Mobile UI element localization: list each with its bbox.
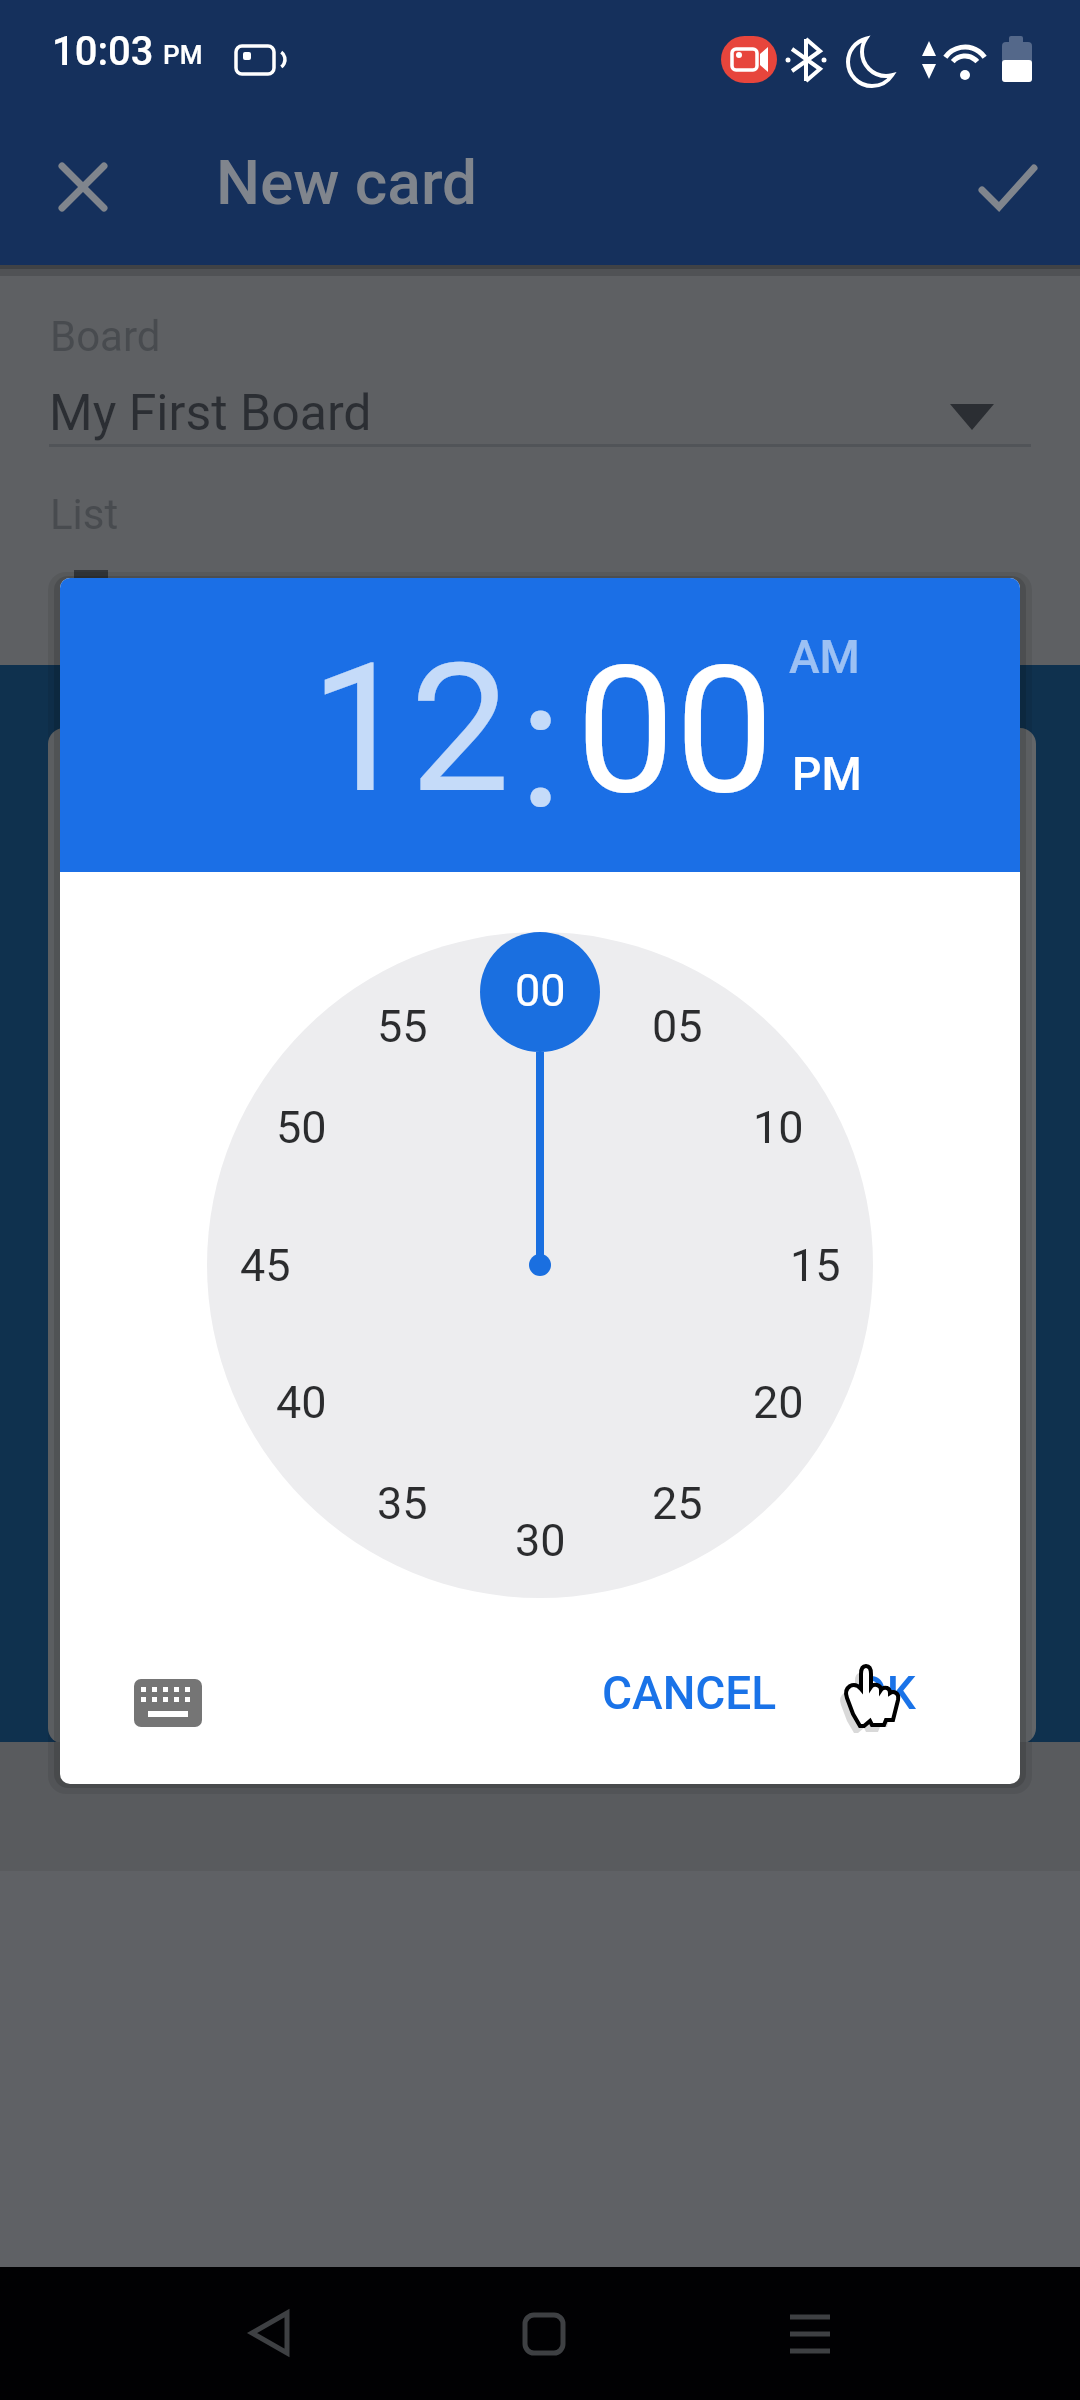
staticText: List <box>50 490 119 539</box>
staticText: My First Board <box>49 384 372 443</box>
staticText: 30 <box>515 1514 566 1567</box>
staticText: AM <box>789 630 860 684</box>
button[interactable] <box>770 2300 850 2370</box>
staticText: 05 <box>652 1000 703 1053</box>
staticText: CANCEL <box>602 1666 777 1720</box>
staticText: 10 <box>753 1101 804 1154</box>
staticText: Board <box>50 312 161 361</box>
button[interactable] <box>0 370 1080 460</box>
staticText: 00 <box>576 628 774 834</box>
button[interactable]: AM <box>764 627 884 687</box>
button[interactable]: CANCEL <box>569 1658 809 1728</box>
button[interactable] <box>230 2300 310 2370</box>
staticText: : <box>519 641 563 850</box>
staticText: 40 <box>276 1376 327 1429</box>
button[interactable] <box>505 2300 585 2370</box>
button[interactable] <box>46 150 118 222</box>
staticText: 55 <box>377 1000 428 1053</box>
staticText: 50 <box>276 1101 327 1154</box>
button[interactable] <box>968 150 1048 222</box>
staticText: 35 <box>377 1477 428 1530</box>
staticText: 12 <box>310 625 511 834</box>
staticText: 25 <box>652 1477 703 1530</box>
staticText: 45 <box>240 1239 291 1292</box>
button[interactable]: PM <box>767 744 887 804</box>
staticText: PM <box>792 747 862 801</box>
staticText: PM <box>163 40 203 70</box>
button[interactable]: OK <box>815 1658 955 1728</box>
staticText: 15 <box>790 1239 841 1292</box>
staticText: OK <box>855 1666 916 1720</box>
button[interactable] <box>120 1674 220 1750</box>
staticText: New card <box>216 146 478 219</box>
staticText: 20 <box>753 1376 804 1429</box>
staticText: 10:03 <box>52 28 154 75</box>
staticText: 00 <box>515 964 566 1017</box>
